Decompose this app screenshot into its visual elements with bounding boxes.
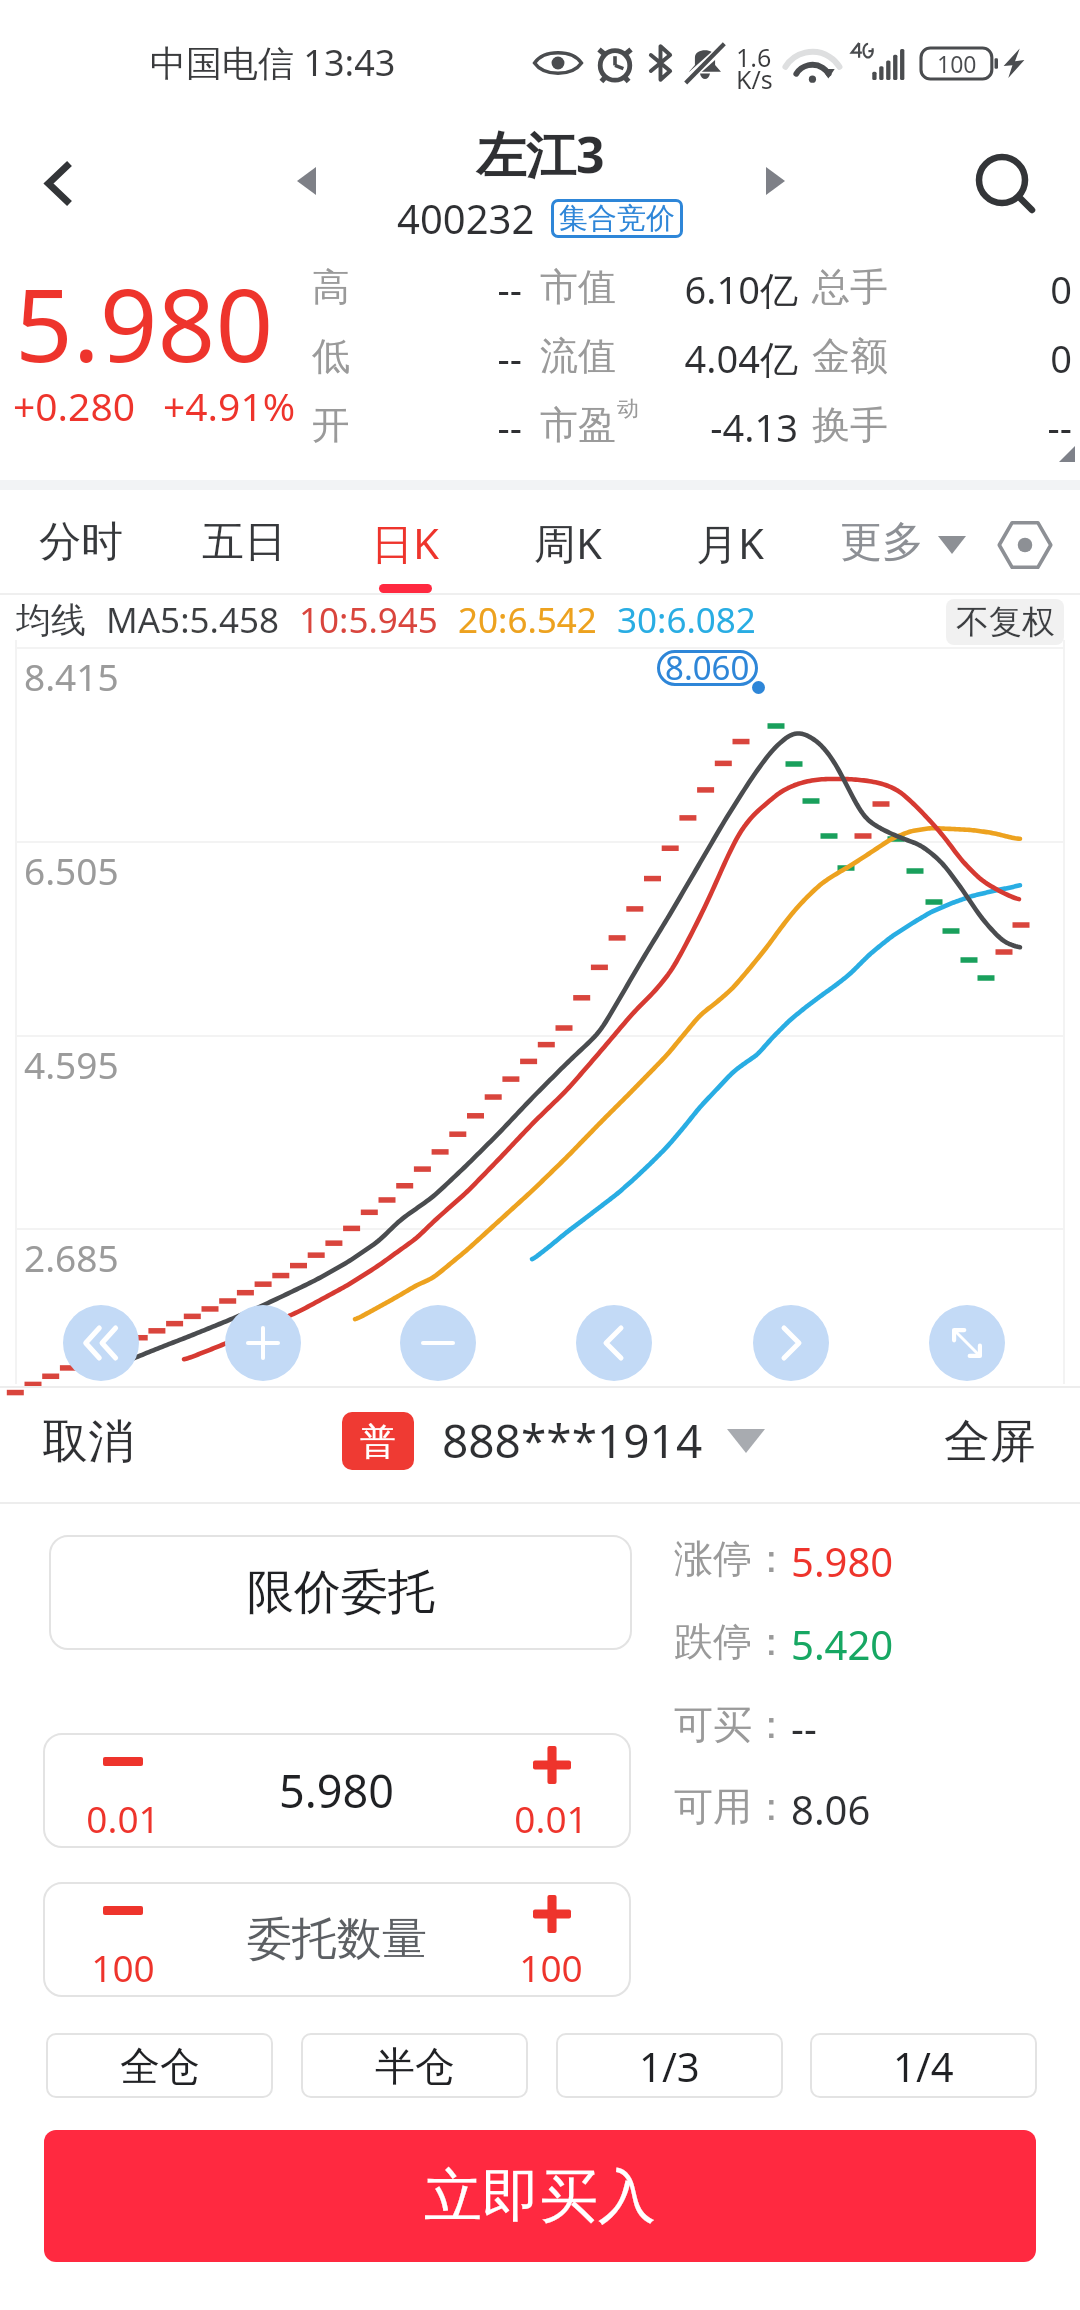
staticText: 换手: [812, 401, 888, 449]
staticText: --: [900, 401, 1072, 453]
staticText: 限价委托: [247, 1563, 435, 1622]
staticText: -4.13: [646, 401, 798, 453]
staticText: 0.01: [471, 1793, 631, 1843]
staticText: 取消: [42, 1413, 134, 1471]
staticText: 400232: [397, 191, 535, 245]
staticText: 20:6.542: [458, 596, 597, 644]
staticText: +4.91%: [163, 379, 296, 432]
staticText: 100: [43, 1942, 203, 1992]
staticText: 可用：: [674, 1782, 791, 1831]
button[interactable]: Decrease: [43, 1733, 213, 1848]
staticText: 分时: [39, 516, 123, 569]
staticText: 4.595: [24, 1039, 119, 1089]
staticText: 888***1914: [442, 1409, 703, 1472]
button[interactable]: 1/4: [810, 2033, 1037, 2098]
button[interactable]: 立即买入: [44, 2130, 1036, 2262]
button[interactable]: 普: [342, 1409, 765, 1472]
staticText: 立即买入: [424, 2160, 656, 2233]
staticText: 日K: [371, 514, 439, 571]
staticText: 4.04亿: [646, 332, 798, 384]
staticText: K/s: [736, 62, 773, 96]
staticText: 全仓: [120, 2041, 200, 2091]
staticText: 动: [617, 395, 639, 423]
staticText: 涨停：: [674, 1534, 791, 1583]
button[interactable]: 五日: [164, 488, 324, 593]
staticText: 5.980: [15, 254, 274, 392]
staticText: 高: [312, 263, 350, 311]
staticText: 8.060: [665, 645, 750, 681]
button[interactable]: Full screen: [929, 1305, 1005, 1381]
button[interactable]: Increase: [461, 1733, 631, 1848]
staticText: 5.980: [791, 1534, 894, 1588]
button[interactable]: Scroll right: [753, 1305, 829, 1381]
staticText: 5.980: [279, 1760, 395, 1821]
staticText: 0: [900, 332, 1072, 384]
staticText: 1/4: [893, 2039, 954, 2093]
staticText: 100: [937, 48, 977, 79]
staticText: 普: [360, 1419, 396, 1464]
staticText: 不复权: [956, 601, 1055, 643]
button[interactable]: 月K: [650, 488, 810, 593]
staticText: 左江3: [476, 120, 605, 188]
button[interactable]: 全仓: [46, 2033, 273, 2098]
staticText: 10:5.945: [299, 596, 438, 644]
staticText: 更多: [840, 516, 924, 569]
button[interactable]: 全屏: [914, 1399, 1080, 1485]
button[interactable]: 分时: [1, 488, 161, 593]
staticText: 1/3: [639, 2039, 700, 2093]
staticText: 全屏: [944, 1413, 1036, 1471]
button[interactable]: 日K: [325, 488, 485, 593]
button[interactable]: Zoom in: [225, 1305, 301, 1381]
button[interactable]: 更多: [840, 488, 966, 593]
staticText: 流值: [540, 332, 616, 380]
button[interactable]: 周K: [488, 488, 648, 593]
button[interactable]: Decrease: [43, 1882, 213, 1997]
staticText: 跌停：: [674, 1617, 791, 1666]
staticText: 集合竞价: [559, 200, 675, 237]
staticText: --: [398, 401, 522, 453]
staticText: 周K: [534, 514, 602, 571]
staticText: --: [398, 263, 522, 315]
staticText: 五日: [202, 516, 286, 569]
staticText: 委托数量: [247, 1911, 427, 1968]
staticText: 月K: [696, 514, 764, 571]
button[interactable]: Previous stock: [266, 141, 346, 221]
button[interactable]: Next stock: [735, 141, 815, 221]
staticText: --: [398, 332, 522, 384]
staticText: 5.420: [791, 1617, 894, 1671]
staticText: 100: [471, 1942, 631, 1992]
staticText: 市盈: [540, 401, 616, 449]
staticText: 低: [312, 332, 350, 380]
button[interactable]: Scroll left: [576, 1305, 652, 1381]
staticText: +0.280: [13, 379, 135, 432]
staticText: 半仓: [375, 2041, 455, 2091]
button[interactable]: 半仓: [301, 2033, 528, 2098]
staticText: --: [791, 1700, 817, 1754]
button[interactable]: Back: [4, 128, 114, 238]
staticText: 6.505: [24, 845, 119, 895]
staticText: 均线: [16, 598, 86, 642]
staticText: 0: [900, 263, 1072, 315]
staticText: 中国电信 13:43: [150, 38, 396, 87]
button[interactable]: 1/3: [556, 2033, 783, 2098]
staticText: 8.415: [24, 651, 119, 701]
button[interactable]: Chart settings: [975, 488, 1075, 593]
button[interactable]: Scroll far left: [63, 1305, 139, 1381]
staticText: MA5:5.458: [106, 596, 279, 644]
button[interactable]: 限价委托: [49, 1535, 632, 1650]
button[interactable]: Zoom out: [400, 1305, 476, 1381]
staticText: 1.6: [736, 40, 772, 74]
button[interactable]: Increase: [461, 1882, 631, 1997]
staticText: 8.06: [791, 1782, 871, 1836]
button[interactable]: 不复权: [946, 599, 1064, 645]
staticText: 可买：: [674, 1700, 791, 1749]
button[interactable]: Search: [958, 136, 1068, 246]
staticText: 开: [312, 401, 350, 449]
button[interactable]: 取消: [0, 1399, 164, 1485]
staticText: 总手: [812, 263, 888, 311]
staticText: 0.01: [43, 1793, 203, 1843]
staticText: 金额: [812, 332, 888, 380]
staticText: 30:6.082: [617, 596, 756, 644]
staticText: 市值: [540, 263, 616, 311]
staticText: 2.685: [24, 1232, 119, 1282]
